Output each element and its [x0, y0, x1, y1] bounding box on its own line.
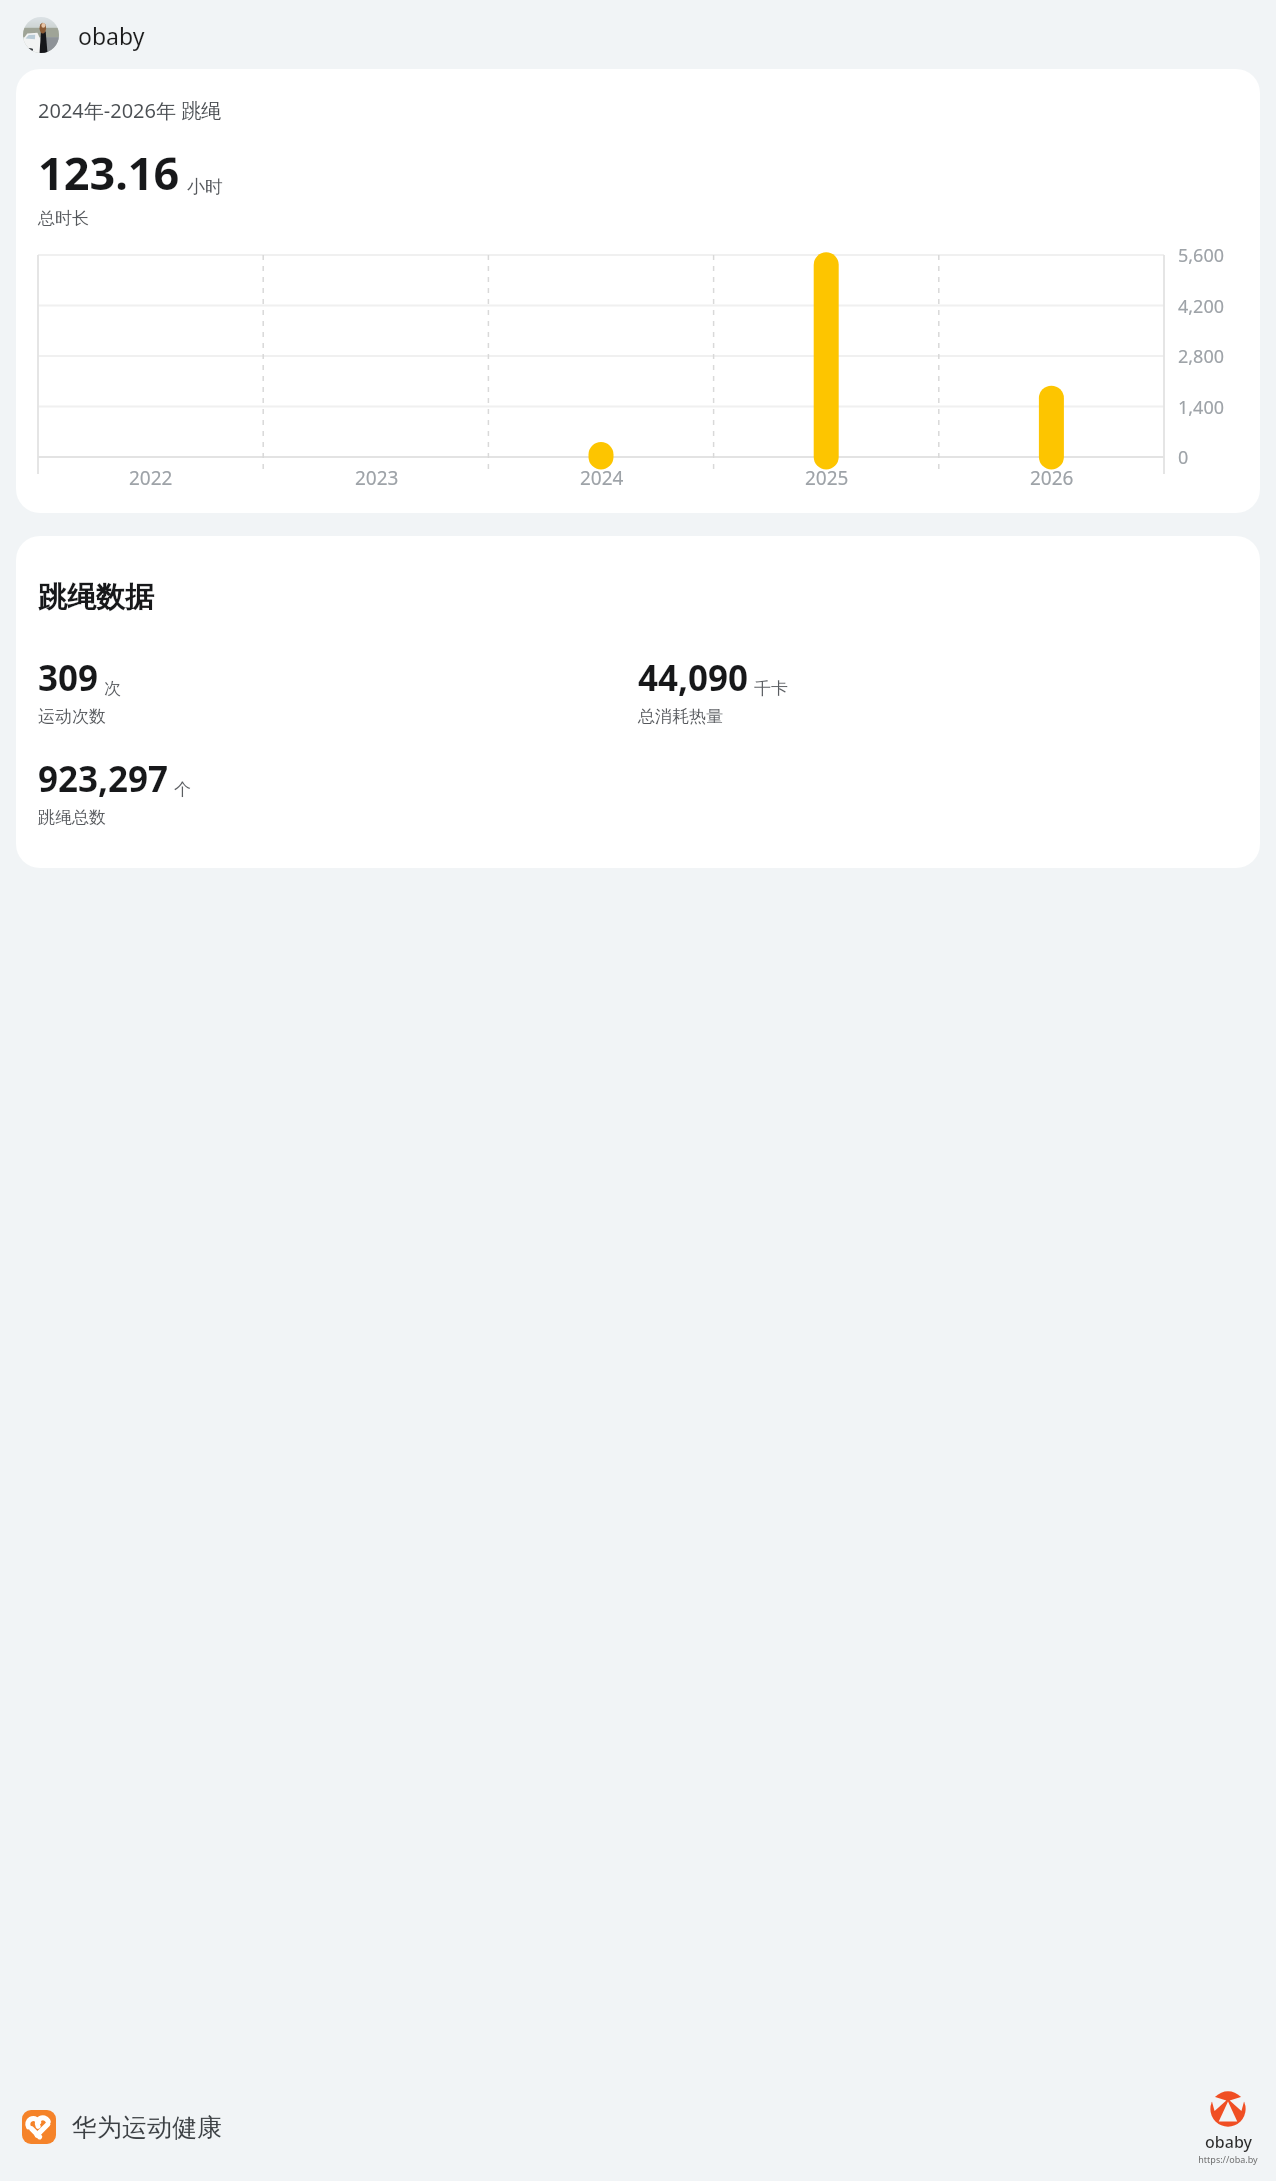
button[interactable]: obaby website — [1198, 2088, 1258, 2165]
staticText: 4,200 — [1178, 294, 1225, 319]
button[interactable]: obaby — [23, 17, 1276, 53]
staticText: 2026 — [1030, 465, 1074, 491]
staticText: 2025 — [805, 465, 849, 491]
staticText: 2024年-2026年 跳绳 — [38, 97, 222, 124]
staticText: 千卡 — [754, 678, 788, 699]
staticText: 1,400 — [1178, 395, 1225, 420]
staticText: 2023 — [355, 465, 399, 491]
staticText: obaby — [1205, 2131, 1252, 2153]
staticText: https://oba.by — [1198, 2153, 1258, 2165]
other: Huawei Health — [22, 2110, 56, 2144]
staticText: 923,297 — [38, 755, 169, 803]
staticText: 2024 — [580, 465, 624, 491]
staticText: 小时 — [187, 176, 223, 199]
staticText: 个 — [174, 779, 191, 800]
staticText: obaby — [78, 20, 145, 51]
staticText: 309 — [38, 654, 99, 702]
staticText: 次 — [104, 678, 121, 699]
staticText: 跳绳总数 — [38, 807, 106, 828]
staticText: 跳绳数据 — [38, 579, 154, 616]
button[interactable]: 2024年-2026年 跳绳 — [16, 69, 1260, 513]
staticText: 123.16 — [38, 142, 180, 203]
staticText: 2022 — [129, 465, 173, 491]
staticText: 2,800 — [1178, 344, 1225, 369]
staticText: 总时长 — [38, 208, 89, 229]
staticText: 44,090 — [638, 654, 749, 702]
staticText: 5,600 — [1178, 243, 1225, 268]
staticText: 运动次数 — [38, 706, 106, 727]
button[interactable]: 跳绳数据 — [16, 536, 1260, 868]
staticText: 总消耗热量 — [638, 706, 723, 727]
staticText: 0 — [1178, 445, 1189, 470]
staticText: 华为运动健康 — [72, 2112, 222, 2143]
button[interactable]: Huawei Health — [22, 2110, 222, 2144]
